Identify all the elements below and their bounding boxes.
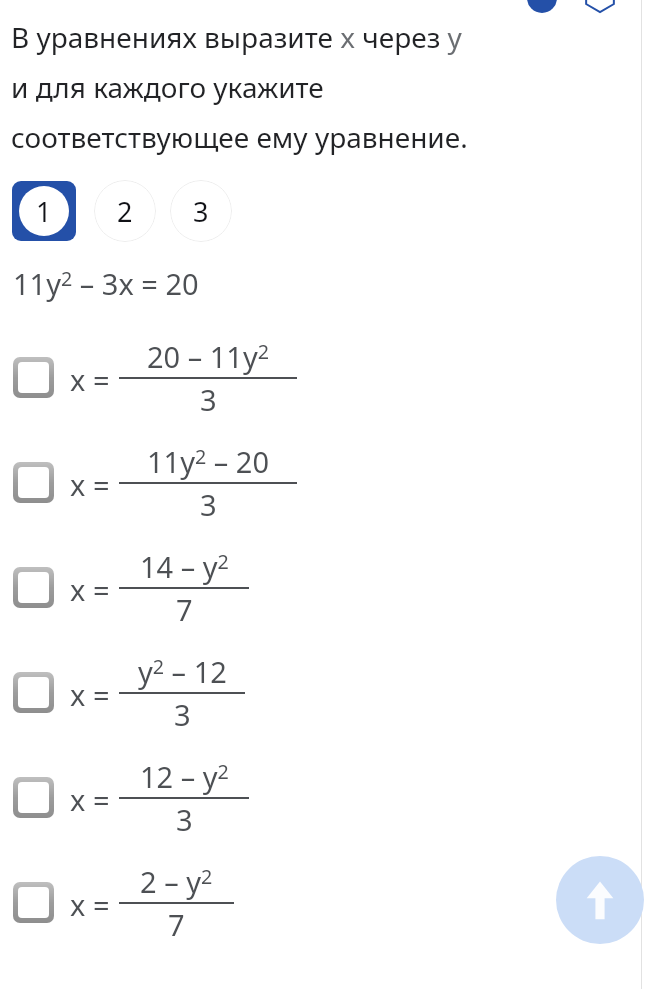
staticText: 11y2 – 20 [147, 442, 270, 481]
button[interactable]: x = [0, 745, 652, 850]
staticText: 12 – y2 [140, 757, 229, 796]
staticText: 14 – y2 [140, 547, 229, 586]
button[interactable]: 1 [12, 181, 76, 241]
staticText: 3 [176, 800, 193, 839]
staticText: x = [70, 780, 110, 819]
button[interactable]: Scroll to top [556, 856, 644, 944]
staticText: 2 – y2 [140, 862, 213, 901]
staticText: В уравнениях выразите x через y и для ка… [11, 18, 468, 156]
staticText: y2 – 12 [138, 652, 227, 691]
staticText: 3 [174, 695, 191, 734]
button[interactable]: 3 [170, 180, 232, 242]
staticText: 7 [168, 905, 185, 944]
staticText: 11y2 – 3x = 20 [13, 264, 199, 303]
staticText: 3 [200, 485, 217, 524]
staticText: 3 [193, 193, 209, 230]
staticText: x = [70, 360, 110, 399]
button[interactable]: x = [0, 535, 652, 640]
staticText: x = [70, 675, 110, 714]
staticText: x = [70, 465, 110, 504]
staticText: 2 [117, 193, 133, 230]
staticText: x = [70, 885, 110, 924]
staticText: 7 [176, 590, 193, 629]
button[interactable]: x = [0, 850, 652, 955]
staticText: 20 – 11y2 [147, 337, 270, 376]
button[interactable]: x = [0, 430, 652, 535]
button[interactable]: x = [0, 640, 652, 745]
staticText: 3 [200, 380, 217, 419]
button[interactable]: 2 [94, 180, 156, 242]
button[interactable]: x = [0, 325, 652, 430]
staticText: 1 [36, 193, 52, 230]
staticText: x = [70, 570, 110, 609]
